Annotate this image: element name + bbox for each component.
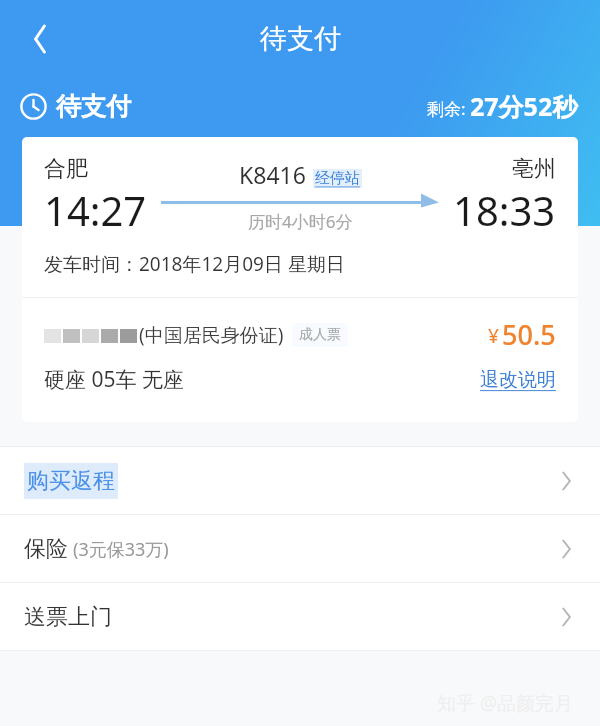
staticText: 18:33 xyxy=(453,183,556,237)
staticText: 成人票 xyxy=(299,326,341,344)
staticText: 50.5 xyxy=(502,316,556,353)
button[interactable]: 送票上门 xyxy=(0,583,600,650)
staticText: (3元保33万) xyxy=(73,537,169,562)
staticText: ¥ xyxy=(488,323,499,349)
staticText: 送票上门 xyxy=(24,603,112,631)
button[interactable]: Back xyxy=(16,15,64,63)
staticText: 硬座 05车 无座 xyxy=(44,365,184,394)
button[interactable]: 退改说明 xyxy=(480,368,556,392)
staticText: 27分52秒 xyxy=(470,89,578,123)
staticText: 发车时间：2018年12月09日 星期日 xyxy=(44,251,345,277)
staticText: 购买返程 xyxy=(27,467,115,495)
staticText: 待支付 xyxy=(56,91,131,122)
button[interactable]: 经停站 xyxy=(315,169,360,188)
button[interactable]: 保险 xyxy=(0,515,600,582)
staticText: (中国居民身份证) xyxy=(139,322,284,348)
staticText: K8416 xyxy=(239,159,306,190)
staticText: 保险 xyxy=(24,535,68,563)
staticText: 知乎 @品颜完月 xyxy=(437,690,574,716)
staticText: 合肥 xyxy=(44,155,88,183)
staticText: 待支付 xyxy=(260,22,341,56)
staticText: 经停站 xyxy=(315,169,360,188)
button[interactable]: 购买返程 xyxy=(0,447,600,514)
staticText: 退改说明 xyxy=(480,368,556,392)
staticText: 历时4小时6分 xyxy=(248,210,353,233)
staticText: 14:27 xyxy=(44,183,147,237)
staticText: 剩余: xyxy=(427,97,466,120)
staticText: 亳州 xyxy=(512,155,556,183)
button[interactable]: (中国居民身份证) xyxy=(22,298,578,422)
